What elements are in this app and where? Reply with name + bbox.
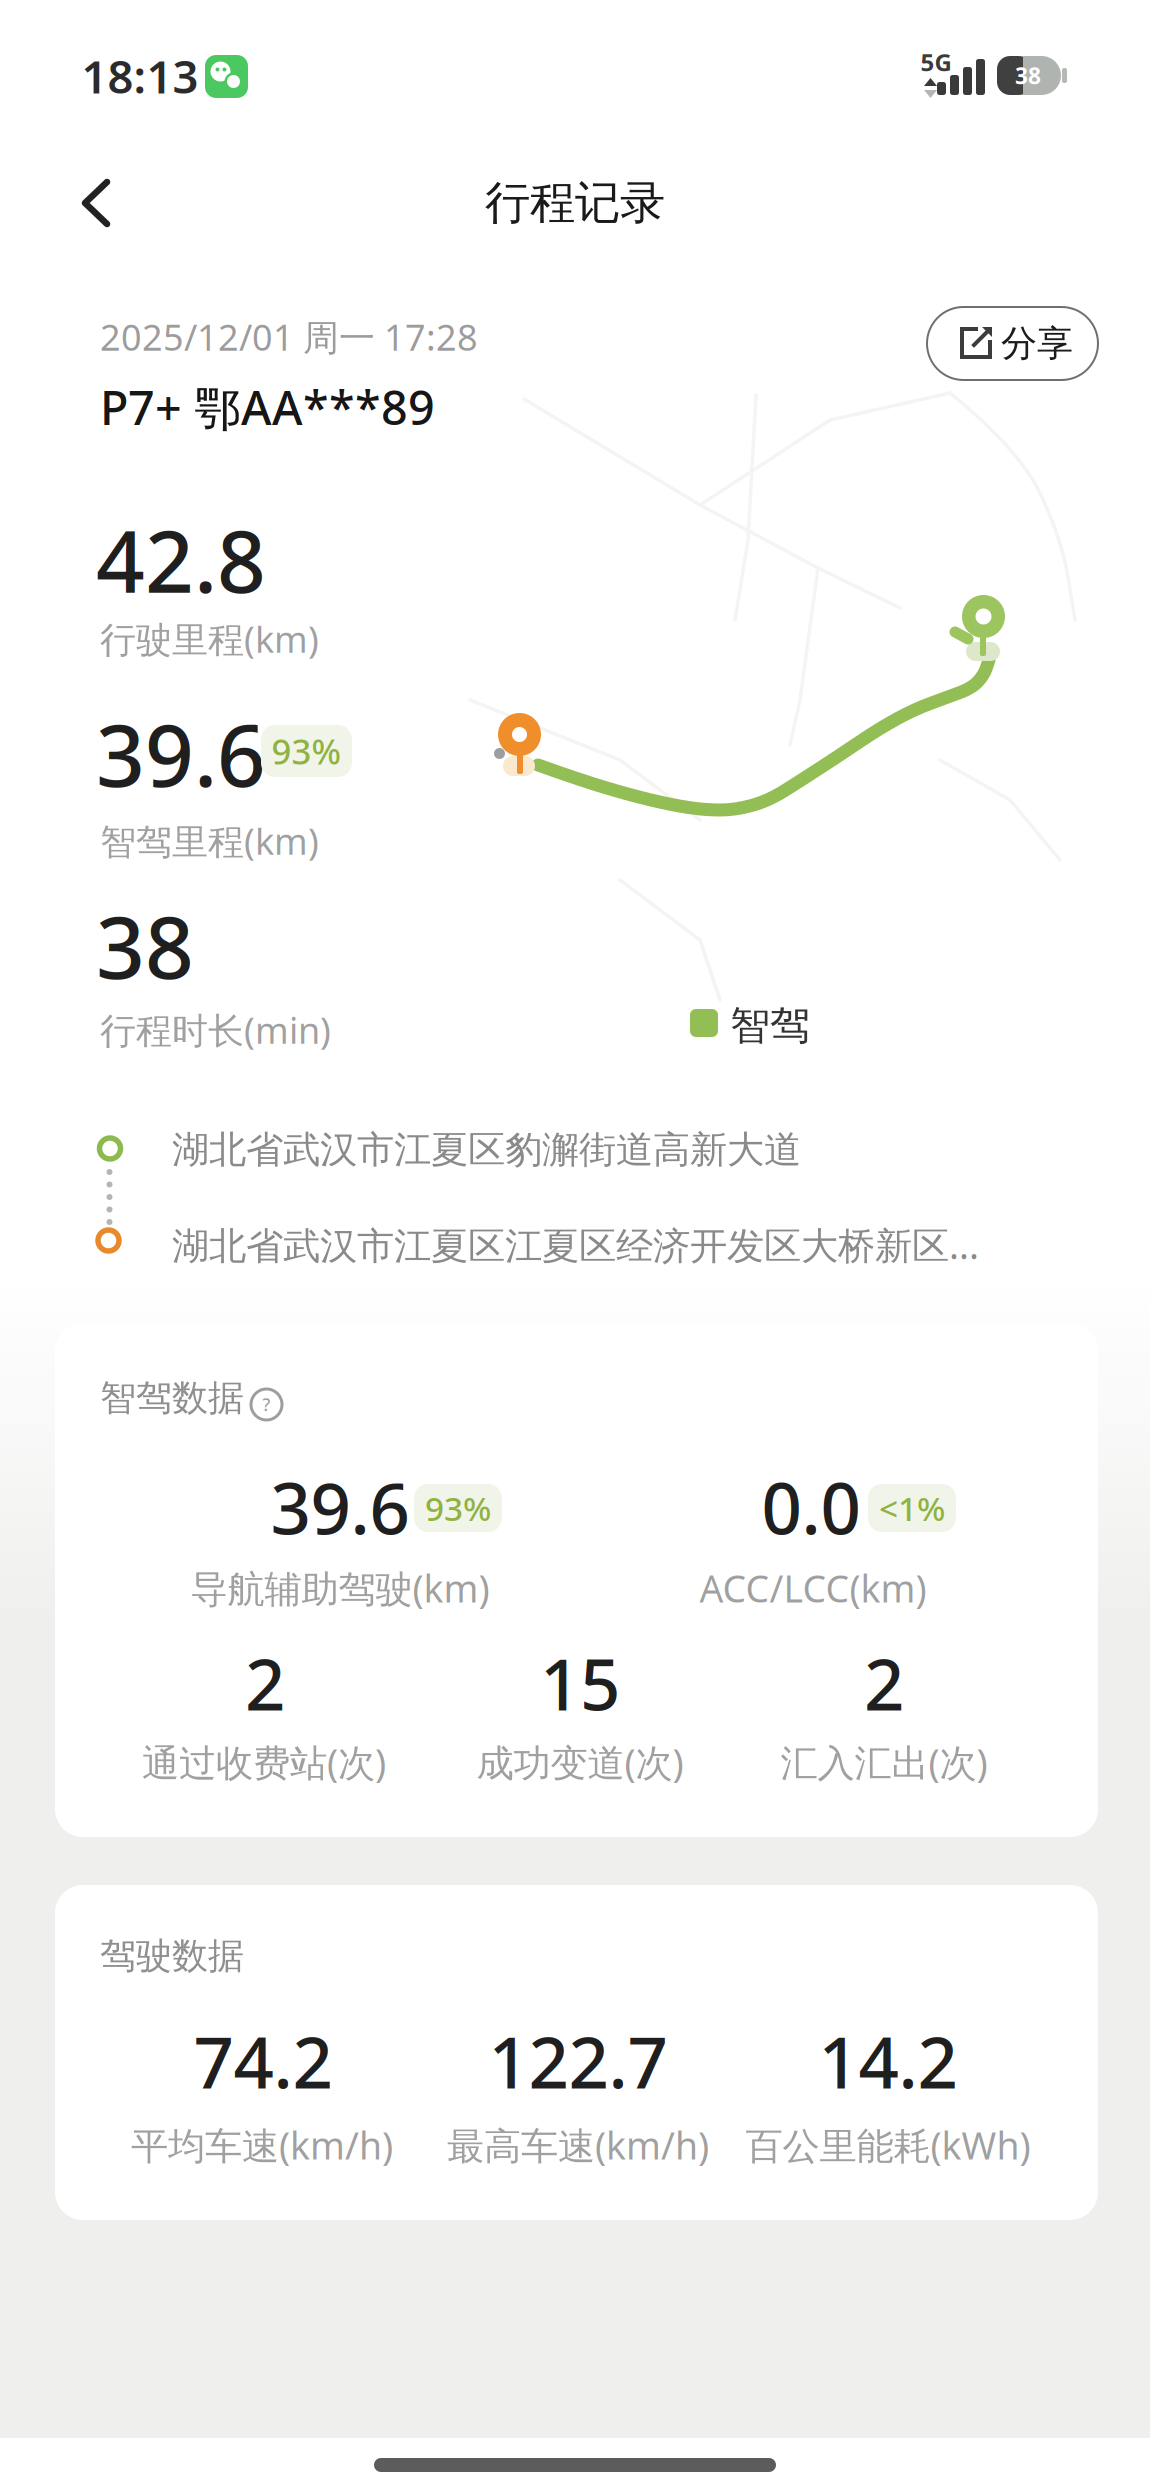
staticText: 智驾数据 [100, 1376, 244, 1420]
staticText: 122.7 [488, 2014, 667, 2108]
staticText: 行程记录 [485, 175, 665, 231]
staticText: 智驾里程(km) [100, 817, 319, 865]
staticText: 93% [425, 1486, 491, 1530]
staticText: 14.2 [818, 2014, 957, 2108]
button[interactable]: Back [83, 181, 127, 225]
staticText: 2025/12/01 周一 17:28 [100, 313, 478, 361]
staticText: ACC/LCC(km) [699, 1563, 926, 1613]
staticText: 38 [1015, 60, 1041, 90]
staticText: ? [262, 1393, 270, 1416]
staticText: 平均车速(km/h) [131, 2120, 393, 2170]
staticText: 38 [96, 889, 194, 1002]
staticText: 湖北省武汉市江夏区豹澥街道高新大道 [172, 1127, 801, 1173]
staticText: 驾驶数据 [100, 1934, 244, 1978]
staticText: 93% [271, 728, 341, 774]
staticText: 42.8 [96, 503, 266, 616]
staticText: 分享 [1001, 321, 1073, 366]
staticText: 39.6 [96, 697, 266, 810]
button[interactable]: 智驾数据说明 [251, 1389, 282, 1420]
staticText: 智驾 [730, 1001, 810, 1050]
staticText: 18:13 [81, 46, 198, 106]
staticText: 2 [864, 1636, 904, 1730]
staticText: <1% [879, 1486, 945, 1530]
staticText: 百公里能耗(kWh) [745, 2120, 1030, 2170]
staticText: 2 [245, 1636, 285, 1730]
staticText: 通过收费站(次) [142, 1737, 386, 1787]
staticText: 成功变道(次) [476, 1737, 683, 1787]
staticText: 39.6 [270, 1460, 409, 1554]
staticText: P7+ 鄂AA***89 [100, 376, 435, 438]
staticText: 导航辅助驾驶(km) [190, 1563, 489, 1613]
staticText: 行程时长(min) [100, 1006, 331, 1054]
staticText: 15 [540, 1636, 620, 1730]
staticText: 74.2 [193, 2014, 332, 2108]
staticText: 最高车速(km/h) [447, 2120, 709, 2170]
staticText: 行驶里程(km) [100, 615, 319, 663]
staticText: 汇入汇出(次) [780, 1737, 987, 1787]
staticText: 5G [920, 46, 951, 78]
staticText: 0.0 [761, 1460, 860, 1554]
button[interactable]: 分享 [927, 307, 1098, 380]
staticText: 湖北省武汉市江夏区江夏区经济开发区大桥新区... [172, 1220, 979, 1270]
